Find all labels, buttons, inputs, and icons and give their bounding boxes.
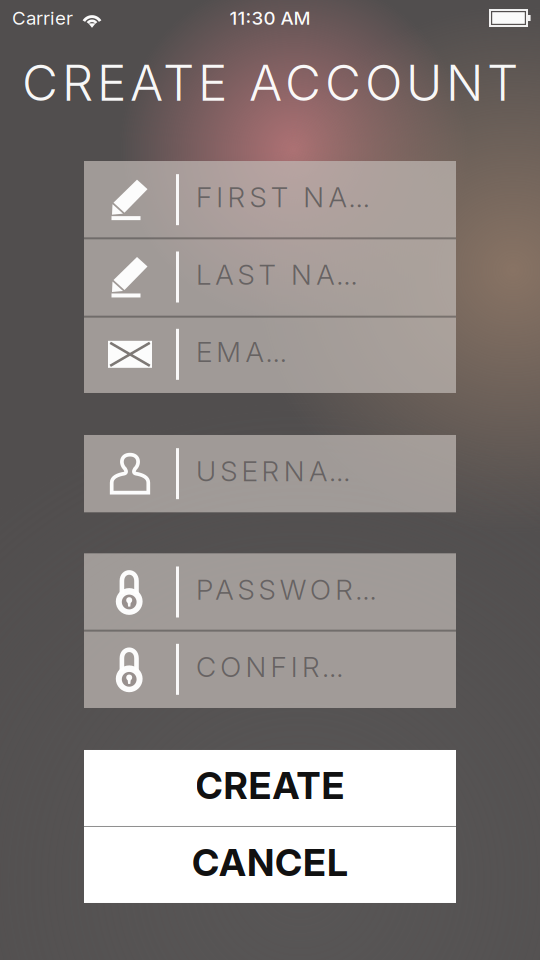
staticText: PASSWORD (196, 572, 377, 606)
staticText: USERNAME (196, 454, 376, 488)
button[interactable]: FIRST NAME (84, 161, 456, 238)
staticText: CONFIRM (196, 650, 349, 684)
staticText: CANCEL (192, 840, 348, 885)
staticText: CREATE ACCOUNT (22, 53, 518, 113)
button[interactable]: PASSWORD (84, 553, 456, 631)
button[interactable]: CANCEL (84, 827, 456, 903)
staticText: LAST NAME (196, 258, 384, 291)
button[interactable]: LAST NAME (84, 238, 456, 316)
button[interactable]: CREATE (84, 750, 456, 826)
button[interactable]: USERNAME (84, 435, 456, 512)
button[interactable]: CONFIRM (84, 631, 456, 708)
staticText: CREATE (195, 763, 344, 808)
button[interactable]: EMAIL (84, 316, 456, 393)
staticText: EMAIL (196, 335, 294, 369)
staticText: 11:30 AM (229, 7, 310, 29)
staticText: FIRST NAME (196, 180, 396, 214)
staticText: Carrier (12, 7, 73, 29)
